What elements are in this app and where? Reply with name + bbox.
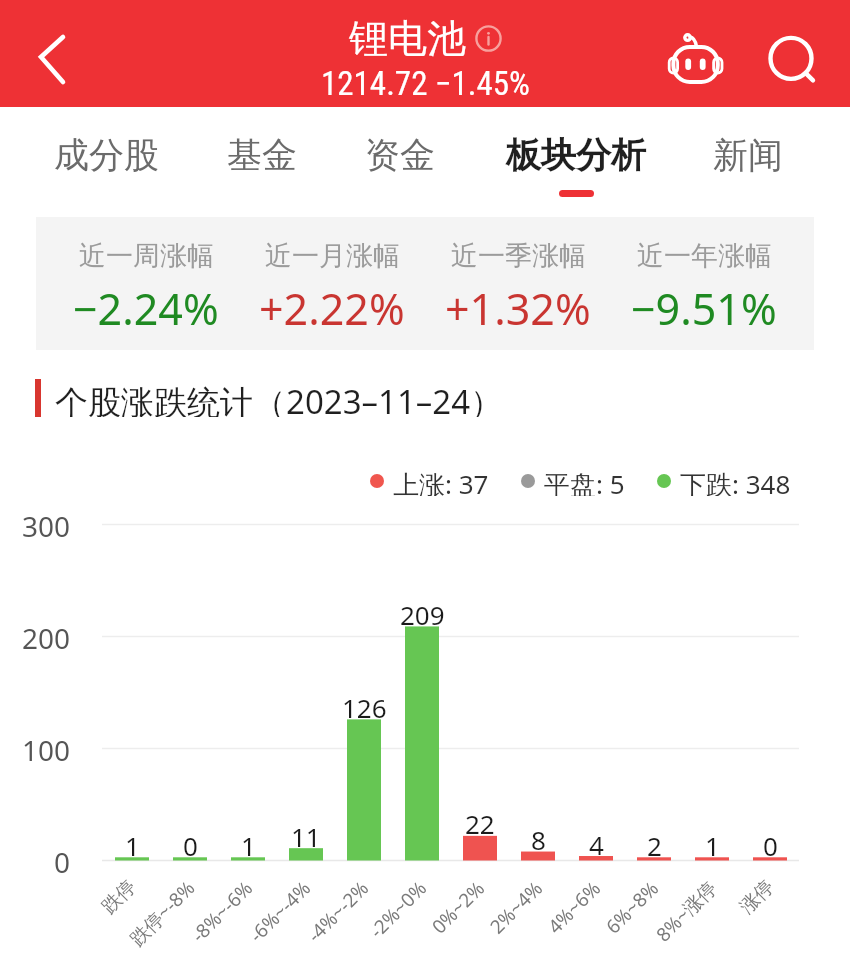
staticText: 100 — [22, 731, 71, 769]
staticText: 新闻 — [713, 133, 783, 177]
staticText: 上涨: 37 — [393, 466, 489, 496]
staticText: 11 — [291, 819, 321, 854]
staticText: 1 — [705, 828, 720, 863]
staticText: 近一年涨幅 — [637, 239, 772, 273]
staticText: 近一周涨幅 — [79, 239, 214, 273]
staticText: 0 — [54, 843, 71, 881]
staticText: 126 — [342, 690, 387, 725]
staticText: -6%~-4% — [244, 875, 316, 948]
staticText: 0%~2% — [426, 875, 490, 939]
button[interactable]: Back — [20, 26, 82, 88]
staticText: 200 — [22, 619, 71, 657]
staticText: 300 — [22, 507, 71, 545]
staticText: 近一季涨幅 — [451, 239, 586, 273]
button[interactable]: 新闻 — [698, 112, 798, 198]
staticText: -4%~-2% — [302, 875, 374, 948]
staticText: +2.22% — [259, 279, 405, 338]
staticText: 成分股 — [54, 133, 159, 177]
staticText: 跌停 — [97, 875, 141, 919]
button[interactable]: 成分股 — [38, 112, 174, 198]
staticText: 涨停 — [735, 875, 779, 919]
staticText: 跌停~-8% — [124, 875, 200, 951]
button[interactable]: 板块分析 — [490, 112, 662, 198]
staticText: 1 — [241, 828, 256, 863]
staticText: +1.32% — [445, 279, 591, 338]
button[interactable]: 资金 — [350, 112, 450, 198]
staticText: 2 — [647, 828, 662, 863]
staticText: 4%~6% — [542, 875, 606, 939]
staticText: 8%~涨停 — [650, 875, 722, 947]
button[interactable]: 基金 — [212, 112, 312, 198]
staticText: 22 — [465, 806, 495, 841]
staticText: 资金 — [365, 133, 435, 177]
staticText: 8 — [531, 822, 546, 857]
staticText: 平盘: 5 — [544, 466, 625, 496]
button[interactable]: AI assistant — [665, 30, 725, 90]
staticText: 4 — [589, 827, 604, 862]
staticText: 下跌: 348 — [680, 466, 791, 496]
staticText: 板块分析 — [506, 133, 646, 177]
staticText: -8%~-6% — [186, 875, 258, 948]
staticText: 6%~8% — [600, 875, 664, 939]
staticText: −2.24% — [73, 279, 219, 338]
staticText: 1 — [125, 828, 140, 863]
staticText: 锂电池 — [349, 14, 466, 63]
button[interactable]: Search — [758, 28, 818, 88]
staticText: -2%~0% — [364, 875, 432, 944]
staticText: −9.51% — [631, 279, 777, 338]
staticText: 基金 — [227, 133, 297, 177]
staticText: 0 — [763, 828, 778, 863]
staticText: 个股涨跌统计（2023–11–24） — [55, 379, 504, 417]
staticText: 0 — [183, 828, 198, 863]
staticText: 1214.72 −1.45% — [321, 64, 530, 103]
staticText: 2%~4% — [484, 875, 548, 939]
staticText: 209 — [400, 597, 445, 632]
staticText: 近一月涨幅 — [265, 239, 400, 273]
